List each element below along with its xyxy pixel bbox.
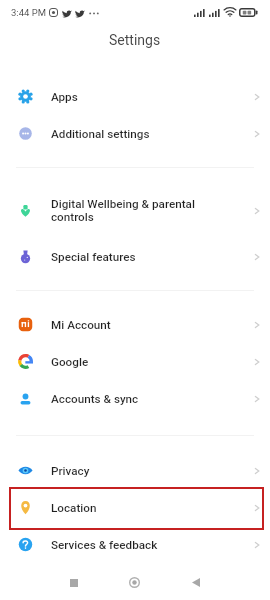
button[interactable]: Accounts & sync [0, 380, 270, 418]
button[interactable]: Privacy [0, 452, 270, 489]
staticText: Digital Wellbeing & parental controls [51, 197, 243, 224]
staticText: Google [51, 355, 243, 369]
staticText: Accounts & sync [51, 392, 243, 406]
staticText: Services & feedback [51, 538, 243, 552]
staticText: Settings [109, 32, 161, 48]
staticText: 3:44 PM [11, 7, 46, 18]
staticText: Special features [51, 250, 243, 264]
button[interactable]: Back [165, 565, 226, 600]
button[interactable]: Recents [44, 565, 104, 600]
button[interactable]: Mi Account [0, 306, 270, 343]
button[interactable]: Special features [0, 238, 270, 275]
button[interactable]: Digital Wellbeing & parental controls [0, 183, 270, 238]
staticText: Additional settings [51, 127, 243, 141]
staticText: Privacy [51, 464, 243, 478]
staticText: Apps [51, 90, 243, 104]
button[interactable]: Home [104, 565, 165, 600]
button[interactable]: Location [0, 489, 270, 526]
staticText: Location [51, 501, 243, 515]
staticText: Mi Account [51, 318, 243, 332]
button[interactable]: Apps [0, 78, 270, 115]
button[interactable]: Additional settings [0, 115, 270, 152]
button[interactable]: Google [0, 343, 270, 380]
button[interactable]: Services & feedback [0, 526, 270, 563]
